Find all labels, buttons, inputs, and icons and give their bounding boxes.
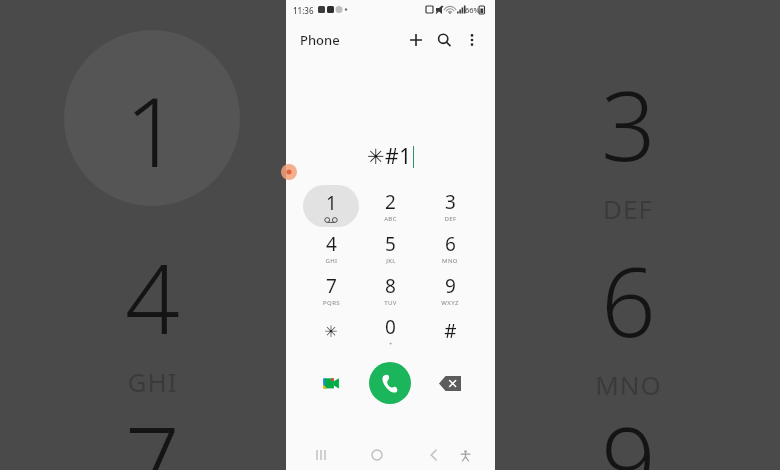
staticText: GHI <box>325 257 338 265</box>
button[interactable]: More options <box>459 27 485 53</box>
button[interactable]: 5 <box>362 227 418 269</box>
button[interactable]: 7 <box>303 269 359 311</box>
staticText: 3 <box>601 58 656 189</box>
button[interactable]: ✳ <box>303 310 359 352</box>
button[interactable]: Recent apps <box>304 440 338 470</box>
staticText: 11:36 <box>293 5 314 16</box>
staticText: 6 <box>601 234 656 365</box>
button[interactable]: 6 <box>422 227 478 269</box>
staticText: DEF <box>444 215 457 223</box>
button[interactable]: Add contact <box>403 27 429 53</box>
button[interactable]: 2 <box>362 185 418 227</box>
staticText: JKL <box>386 257 396 265</box>
button[interactable]: Backspace <box>432 369 468 397</box>
staticText: 7 <box>125 394 180 470</box>
staticText: GHI <box>127 364 178 399</box>
button[interactable]: 9 <box>422 269 478 311</box>
staticText: 5 <box>385 231 396 257</box>
staticText: # <box>444 318 457 344</box>
button[interactable]: Video call <box>315 367 347 399</box>
staticText: 66% <box>465 5 480 15</box>
staticText: 9 <box>445 273 456 299</box>
staticText: 1 <box>125 64 180 195</box>
staticText: + <box>389 340 393 348</box>
staticText: 9 <box>601 394 656 470</box>
staticText: WXYZ <box>441 299 459 307</box>
staticText: TUV <box>384 299 397 307</box>
button[interactable]: Back <box>417 440 451 470</box>
staticText: MNO <box>595 367 662 402</box>
staticText: DEF <box>603 191 653 226</box>
staticText: ✳#1 <box>367 142 412 171</box>
button[interactable]: 8 <box>362 269 418 311</box>
staticText: 8 <box>385 273 396 299</box>
staticText: 1 <box>326 190 337 216</box>
staticText: ✳ <box>324 322 338 341</box>
staticText: MNO <box>442 257 458 265</box>
staticText: 4 <box>125 231 180 362</box>
button[interactable]: Search <box>431 27 457 53</box>
button[interactable]: Home <box>360 440 394 470</box>
button[interactable]: 0 <box>362 310 418 352</box>
button[interactable]: 3 <box>422 185 478 227</box>
button[interactable]: # <box>422 310 478 352</box>
staticText: PQRS <box>323 299 340 307</box>
staticText: 6 <box>445 231 456 257</box>
staticText: 3 <box>445 189 456 215</box>
button[interactable]: 1 <box>303 185 359 227</box>
staticText: 0 <box>385 314 396 340</box>
staticText: Phone <box>300 31 340 49</box>
button[interactable]: Call <box>369 362 411 404</box>
staticText: 4 <box>326 231 337 257</box>
staticText: 7 <box>326 273 337 299</box>
staticText: ABC <box>384 215 397 223</box>
button[interactable]: 4 <box>303 227 359 269</box>
staticText: 2 <box>385 189 396 215</box>
button[interactable]: Accessibility <box>453 443 477 467</box>
